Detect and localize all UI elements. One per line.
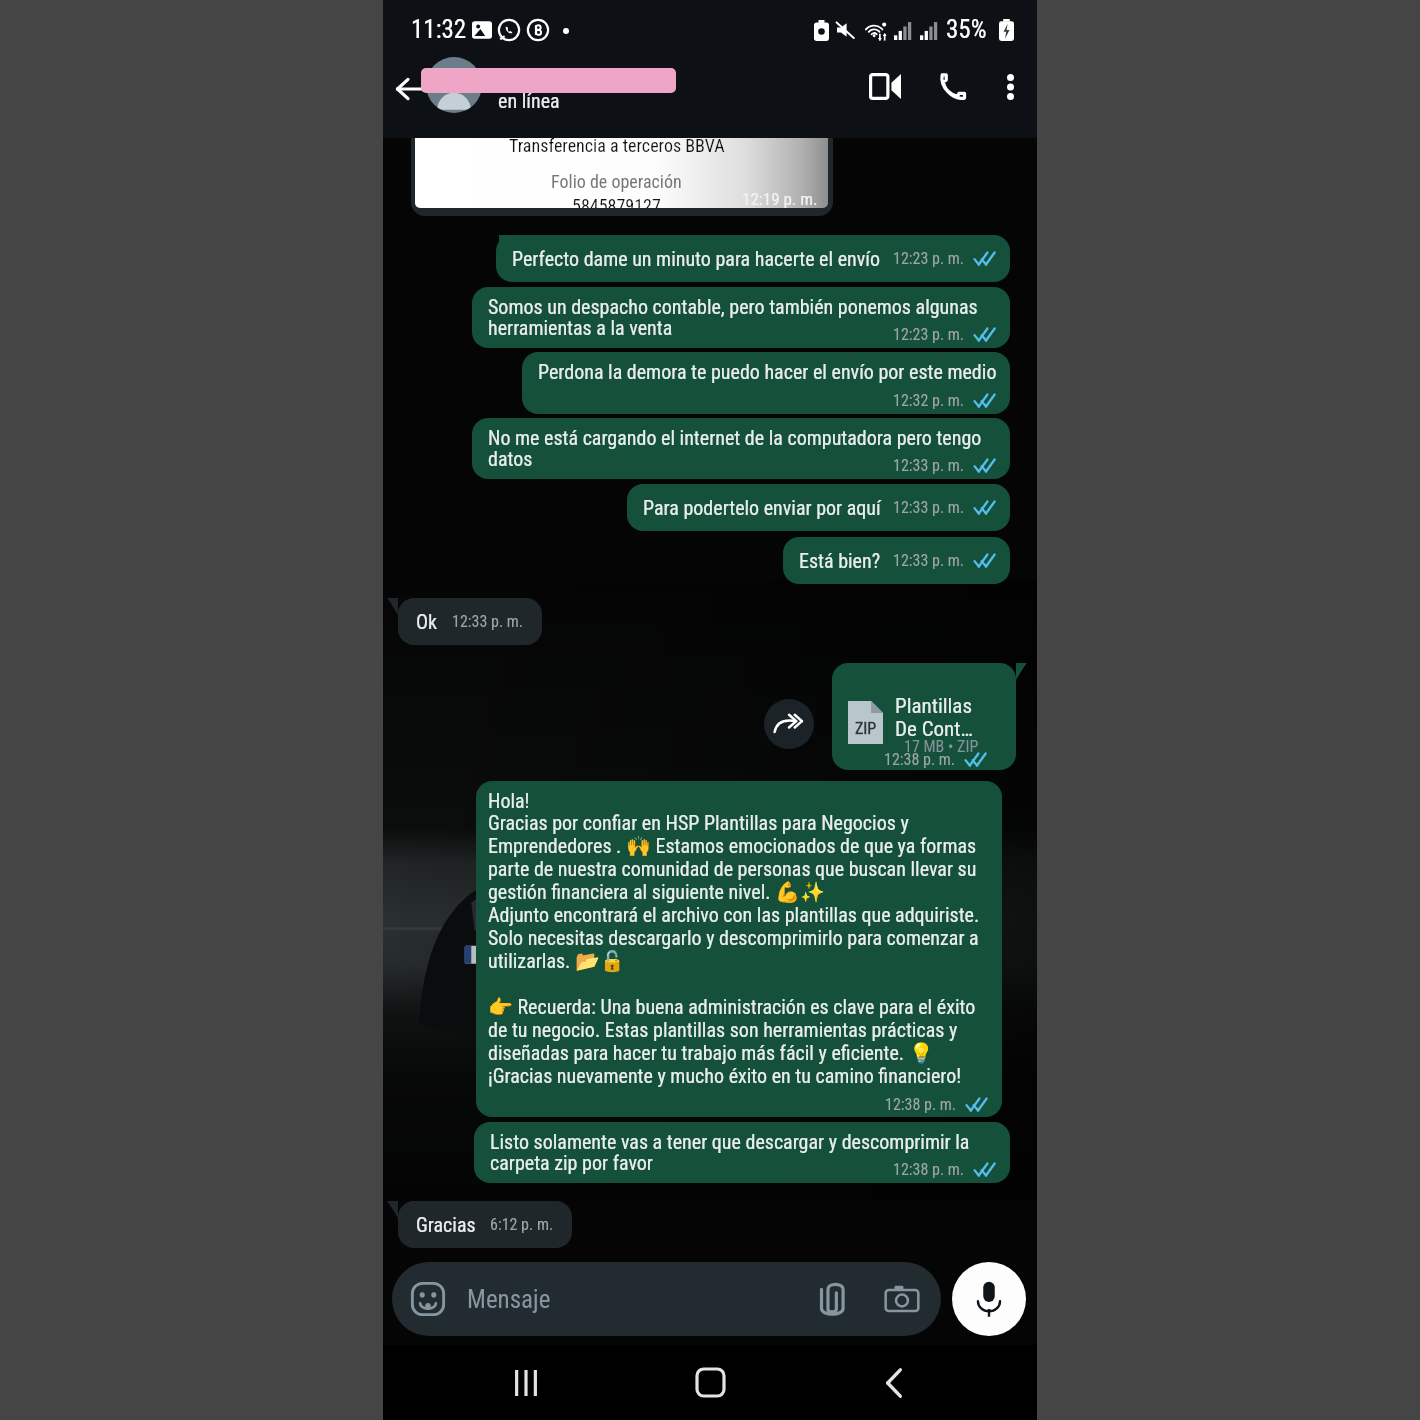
button[interactable]: Hola! Gracias por confiar en HSP Plantil… [476,781,1002,1117]
button[interactable]: Back [855,1345,933,1420]
staticText: Hola! Gracias por confiar en HSP Plantil… [488,789,980,1111]
button[interactable]: Back [383,51,439,126]
button[interactable]: Home [671,1345,749,1420]
button[interactable]: Para podertelo enviar por aquí [627,484,1010,531]
staticText: 12:23 p. m. [893,249,965,268]
button[interactable]: Stickers [392,1262,941,1336]
staticText: 11:32 [411,15,467,44]
staticText: Plantillas [895,694,972,719]
button[interactable]: Ok [398,598,542,645]
staticText: Folio de operación [551,171,682,192]
staticText: 12:38 p. m. [884,750,956,769]
staticText: 12:19 p. m. [742,189,818,208]
other: Camera [885,1284,919,1314]
button[interactable]: Recent apps [487,1345,565,1420]
staticText: Mensaje [467,1285,551,1314]
button[interactable]: ZIP [832,663,1016,770]
other: Stickers [411,1282,445,1316]
staticText: 12:33 p. m. [452,612,524,631]
staticText: Perfecto dame un minuto para hacerte el … [512,247,881,270]
button[interactable]: More options [983,49,1037,124]
staticText: Transferencia a terceros BBVA [509,138,725,156]
staticText: Perdona la demora te puedo hacer el enví… [538,360,997,406]
staticText: 12:38 p. m. [885,1095,957,1114]
button[interactable]: Gracias [398,1201,572,1248]
staticText: Somos un despacho contable, pero también… [488,295,978,340]
button[interactable]: No me está cargando el internet de la co… [472,418,1010,479]
staticText: 6:12 p. m. [490,1215,554,1234]
staticText: De Cont… [895,717,973,742]
staticText: 17 MB • ZIP [904,737,979,756]
button[interactable]: Voice message [952,1262,1026,1336]
staticText: 12:33 p. m. [893,456,965,475]
button[interactable]: Voice call [919,49,983,124]
staticText: 12:32 p. m. [893,391,965,410]
staticText: en línea [498,89,560,112]
staticText: 5845879127 [572,195,661,208]
staticText: Gracias [416,1213,476,1236]
staticText: 12:33 p. m. [893,551,965,570]
other: Attach [819,1282,847,1316]
staticText: Para podertelo enviar por aquí [643,496,881,519]
button[interactable]: Somos un despacho contable, pero también… [472,287,1010,348]
staticText: Listo solamente vas a tener que descarga… [490,1130,970,1175]
staticText: ZIP [855,719,877,738]
button[interactable]: Perfecto dame un minuto para hacerte el … [496,235,1010,282]
staticText: Está bien? [799,549,881,572]
button[interactable]: Listo solamente vas a tener que descarga… [474,1122,1010,1183]
staticText: No me está cargando el internet de la co… [488,426,982,471]
staticText: 12:38 p. m. [893,1160,965,1179]
button[interactable]: en línea [439,63,851,138]
button[interactable]: Transferencia a terceros BBVA [411,138,833,216]
staticText: 12:23 p. m. [893,325,965,344]
button[interactable]: Video call [851,49,919,124]
staticText: 12:33 p. m. [893,498,965,517]
staticText: Ok [416,610,438,633]
staticText: 35% [946,15,987,44]
button[interactable]: Forward [764,699,814,749]
button[interactable]: Está bien? [783,537,1010,584]
button[interactable]: Perdona la demora te puedo hacer el enví… [522,352,1010,414]
